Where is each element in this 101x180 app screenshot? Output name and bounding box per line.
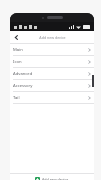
button[interactable]: Main — [10, 44, 94, 55]
button[interactable]: Add new device — [10, 174, 94, 180]
staticText: Tail — [13, 95, 20, 101]
staticText: Advanced — [13, 71, 33, 77]
button[interactable]: Back — [10, 31, 23, 44]
staticText: Main — [13, 47, 23, 53]
staticText: Add new device — [39, 35, 66, 40]
staticText: Add new device — [42, 177, 69, 180]
button[interactable]: Advanced — [10, 68, 94, 79]
staticText: Accessory — [13, 83, 33, 89]
button[interactable]: Accessory — [10, 80, 94, 91]
staticText: Icon — [13, 59, 22, 65]
button[interactable]: Tail — [10, 92, 94, 103]
button[interactable]: Icon — [10, 56, 94, 67]
